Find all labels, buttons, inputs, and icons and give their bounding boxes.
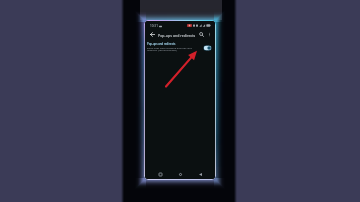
button[interactable]: Pop-ups and redirects xyxy=(145,42,215,56)
staticText: 10:31 xyxy=(150,24,158,28)
button[interactable]: More options xyxy=(205,30,213,38)
staticText: Pop-ups and redirects xyxy=(158,33,196,38)
staticText: Pop-ups and redirects xyxy=(147,42,176,46)
staticText: Block sites from showing pop-ups and red… xyxy=(147,46,201,52)
button[interactable]: Recents xyxy=(155,169,165,179)
button[interactable]: Navigate up xyxy=(148,30,156,38)
button[interactable]: Home xyxy=(175,169,185,179)
button[interactable]: Back xyxy=(195,169,205,179)
button[interactable]: Toggle pop-ups and redirects xyxy=(203,45,212,51)
button[interactable]: Search xyxy=(197,30,205,38)
